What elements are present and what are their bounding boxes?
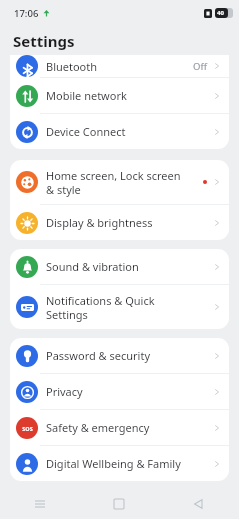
staticText: Sound & vibration [46,259,212,274]
staticText: 17:06 [14,7,39,20]
staticText: 40 [217,9,224,17]
staticText: Safety & emergency [46,420,212,435]
staticText: Settings [13,31,75,51]
staticText: Mobile network [46,88,212,103]
button[interactable]: Recent apps [0,488,79,519]
staticText: Display & brightness [46,215,212,230]
button[interactable]: Back [158,488,237,519]
button[interactable]: Display & brightness [10,205,229,240]
button[interactable]: Home [79,488,158,519]
button[interactable]: Bluetooth [10,55,229,77]
button[interactable]: Sound & vibration [10,249,229,284]
button[interactable]: SOS [10,410,229,445]
staticText: Digital Wellbeing & Family [46,456,212,471]
staticText: Off [193,60,207,73]
button[interactable]: Password & security [10,338,229,373]
button[interactable]: Notifications & Quick Settings [10,285,229,329]
button[interactable]: Mobile network [10,78,229,113]
staticText: Device Connect [46,124,212,139]
staticText: Notifications & Quick Settings [46,293,212,322]
button[interactable]: Home screen, Lock screen & style [10,160,229,204]
staticText: Privacy [46,384,212,399]
staticText: Bluetooth [46,59,193,74]
button[interactable]: Device Connect [10,114,229,149]
staticText: Password & security [46,348,212,363]
button[interactable]: Privacy [10,374,229,409]
staticText: Home screen, Lock screen & style [46,168,203,197]
button[interactable]: Digital Wellbeing & Family [10,446,229,481]
staticText: SOS [22,425,33,432]
